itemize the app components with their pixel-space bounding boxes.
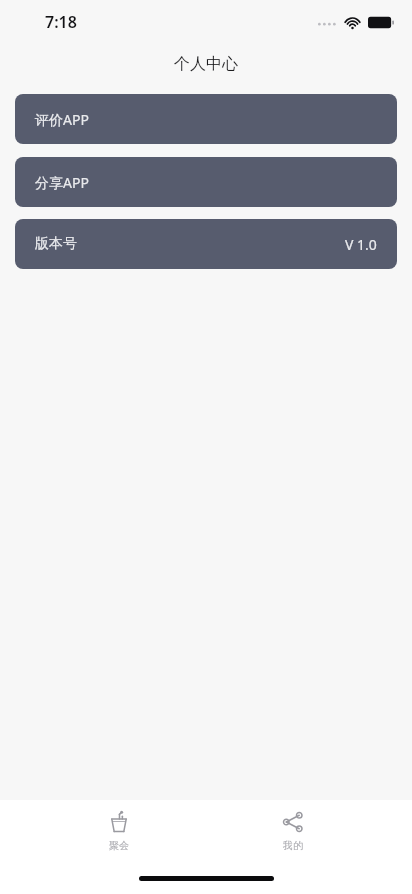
button[interactable]: 评价APP bbox=[15, 94, 397, 144]
button[interactable]: 我的 bbox=[238, 804, 348, 858]
staticText: 聚会 bbox=[109, 839, 129, 852]
staticText: 7:18 bbox=[45, 11, 77, 33]
button[interactable]: 版本号 bbox=[15, 219, 397, 269]
staticText: 评价APP bbox=[35, 110, 89, 129]
staticText: 个人中心 bbox=[0, 54, 412, 74]
staticText: 我的 bbox=[283, 839, 303, 852]
button[interactable]: 聚会 bbox=[64, 804, 174, 858]
button[interactable]: 分享APP bbox=[15, 157, 397, 207]
staticText: 版本号 bbox=[35, 235, 77, 253]
staticText: V 1.0 bbox=[345, 235, 377, 254]
staticText: 分享APP bbox=[35, 173, 89, 192]
